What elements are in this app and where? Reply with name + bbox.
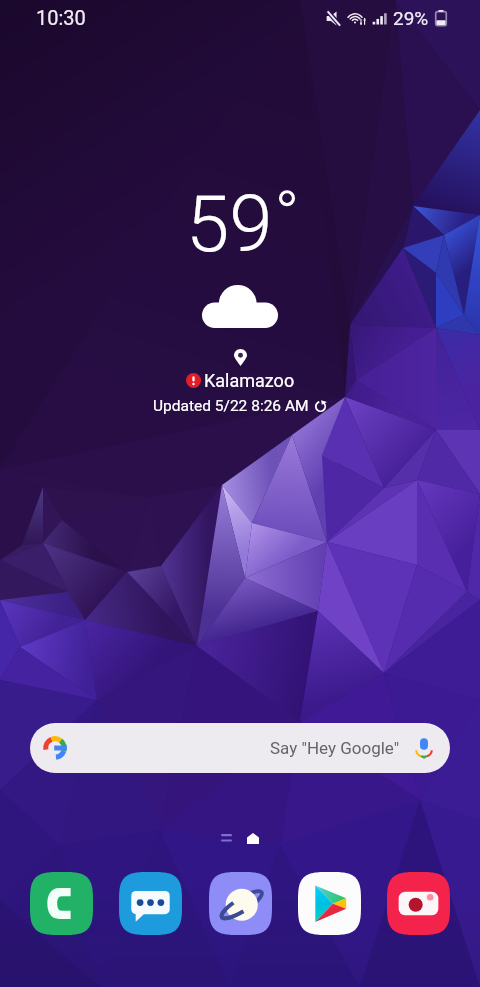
staticText: 10:30: [36, 6, 86, 29]
button[interactable]: 59: [0, 179, 480, 415]
staticText: 29%: [393, 7, 429, 29]
button[interactable]: Messages: [119, 872, 182, 935]
staticText: Updated 5/22 8:26 AM: [153, 397, 309, 415]
button[interactable]: Phone: [30, 872, 93, 935]
staticText: Kalamazoo: [204, 370, 295, 391]
staticText: 59: [186, 179, 273, 270]
button[interactable]: Say "Hey Google": [30, 723, 450, 773]
button[interactable]: Play Store: [298, 872, 361, 935]
staticText: Say "Hey Google": [270, 738, 400, 758]
button[interactable]: Camera: [387, 872, 450, 935]
button[interactable]: Internet: [209, 872, 272, 935]
